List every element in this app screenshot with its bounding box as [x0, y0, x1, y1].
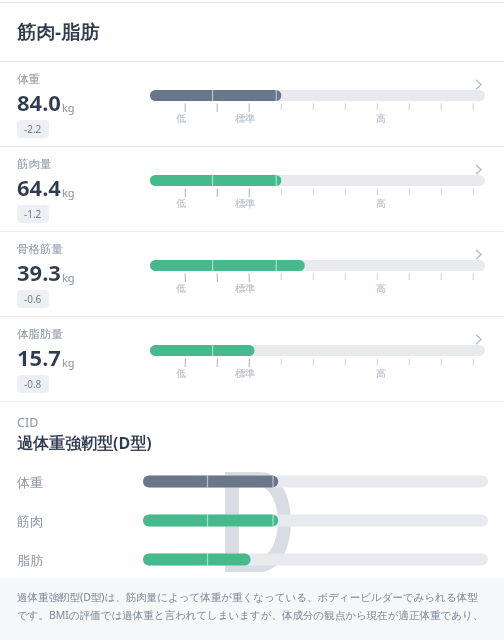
button[interactable]: 詳細: [466, 157, 490, 181]
staticText: 15.7: [17, 342, 61, 372]
button[interactable]: 詳細: [466, 242, 490, 266]
staticText: 低: [176, 112, 186, 125]
staticText: 低: [176, 282, 186, 295]
staticText: 標準: [235, 367, 255, 380]
staticText: kg: [62, 355, 75, 370]
staticText: -0.8: [24, 377, 42, 391]
staticText: 筋肉-脂肪: [17, 19, 100, 45]
staticText: 標準: [235, 112, 255, 125]
staticText: kg: [62, 100, 75, 115]
button[interactable]: 筋肉量: [0, 147, 504, 231]
button[interactable]: 体脂肪量: [0, 317, 504, 401]
staticText: 過体重強靭型(D型)は、筋肉量によって体重が重くなっている、ボディービルダーでみ…: [17, 590, 487, 626]
staticText: 高: [376, 367, 386, 380]
staticText: -2.2: [24, 122, 42, 136]
button[interactable]: 詳細: [466, 327, 490, 351]
staticText: 39.3: [17, 257, 61, 287]
button[interactable]: 脂肪: [17, 540, 488, 579]
staticText: 標準: [235, 197, 255, 210]
staticText: 筋肉: [17, 513, 43, 529]
staticText: 低: [176, 367, 186, 380]
staticText: 筋肉量: [17, 157, 52, 171]
staticText: 64.4: [17, 172, 61, 202]
button[interactable]: 体重: [17, 462, 488, 501]
staticText: 高: [376, 282, 386, 295]
staticText: 過体重強靭型(D型): [17, 432, 152, 454]
staticText: 高: [376, 112, 386, 125]
button[interactable]: 骨格筋量: [0, 232, 504, 316]
staticText: 体脂肪量: [17, 327, 63, 341]
staticText: 84.0: [17, 87, 61, 117]
staticText: 骨格筋量: [17, 242, 63, 256]
staticText: 低: [176, 197, 186, 210]
staticText: 脂肪: [17, 552, 43, 568]
staticText: CID: [17, 414, 39, 431]
button[interactable]: 詳細: [466, 72, 490, 96]
staticText: 体重: [17, 72, 40, 86]
staticText: -1.2: [24, 207, 42, 221]
staticText: 体重: [17, 474, 43, 490]
button[interactable]: 体重: [0, 62, 504, 146]
staticText: -0.6: [24, 292, 42, 306]
staticText: kg: [62, 185, 75, 200]
staticText: 標準: [235, 282, 255, 295]
staticText: 高: [376, 197, 386, 210]
staticText: kg: [62, 270, 75, 285]
button[interactable]: 筋肉: [17, 501, 488, 540]
